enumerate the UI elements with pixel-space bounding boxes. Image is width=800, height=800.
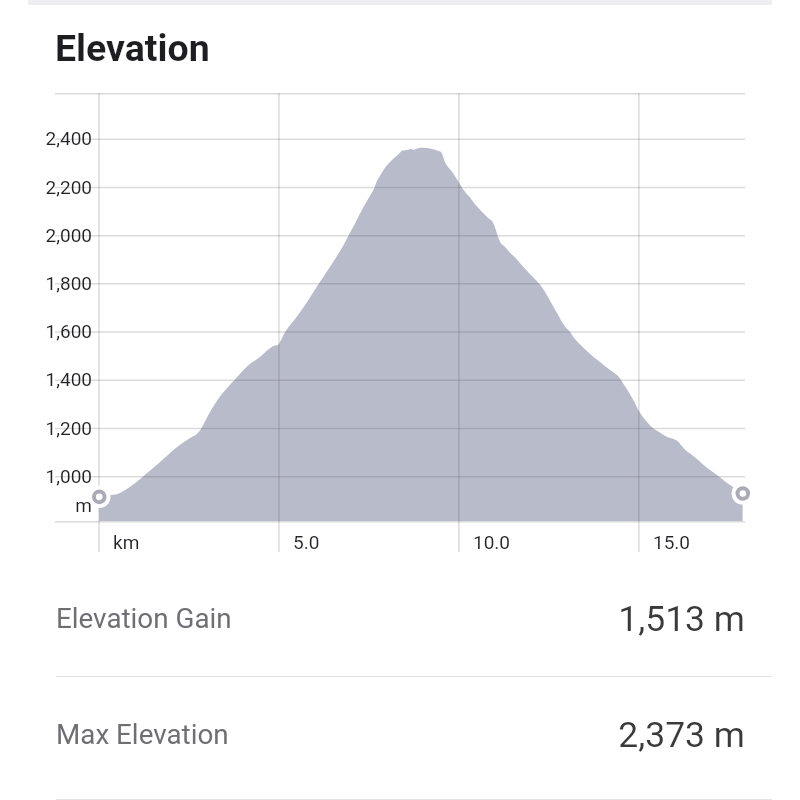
staticText: 1,800	[45, 272, 92, 294]
staticText: 1,400	[45, 368, 92, 390]
staticText: 1,600	[45, 320, 92, 342]
staticText: 10.0	[473, 531, 511, 553]
staticText: 1,513 m	[618, 598, 745, 640]
staticText: 1,200	[45, 417, 92, 439]
staticText: Elevation Gain	[56, 602, 232, 635]
staticText: 2,000	[45, 224, 92, 246]
staticText: 2,400	[45, 127, 92, 149]
staticText: 5.0	[293, 531, 320, 553]
button[interactable]: Elevation	[0, 0, 155, 44]
staticText: 1,000	[45, 465, 92, 487]
staticText: 15.0	[653, 531, 691, 553]
staticText: km	[113, 531, 140, 553]
staticText: 2,373 m	[618, 714, 745, 756]
staticText: 2,200	[45, 176, 92, 198]
staticText: m	[75, 494, 92, 516]
button[interactable]	[0, 560, 800, 676]
staticText: Max Elevation	[56, 718, 229, 751]
staticText: Elevation	[55, 26, 210, 70]
button[interactable]	[0, 676, 800, 800]
